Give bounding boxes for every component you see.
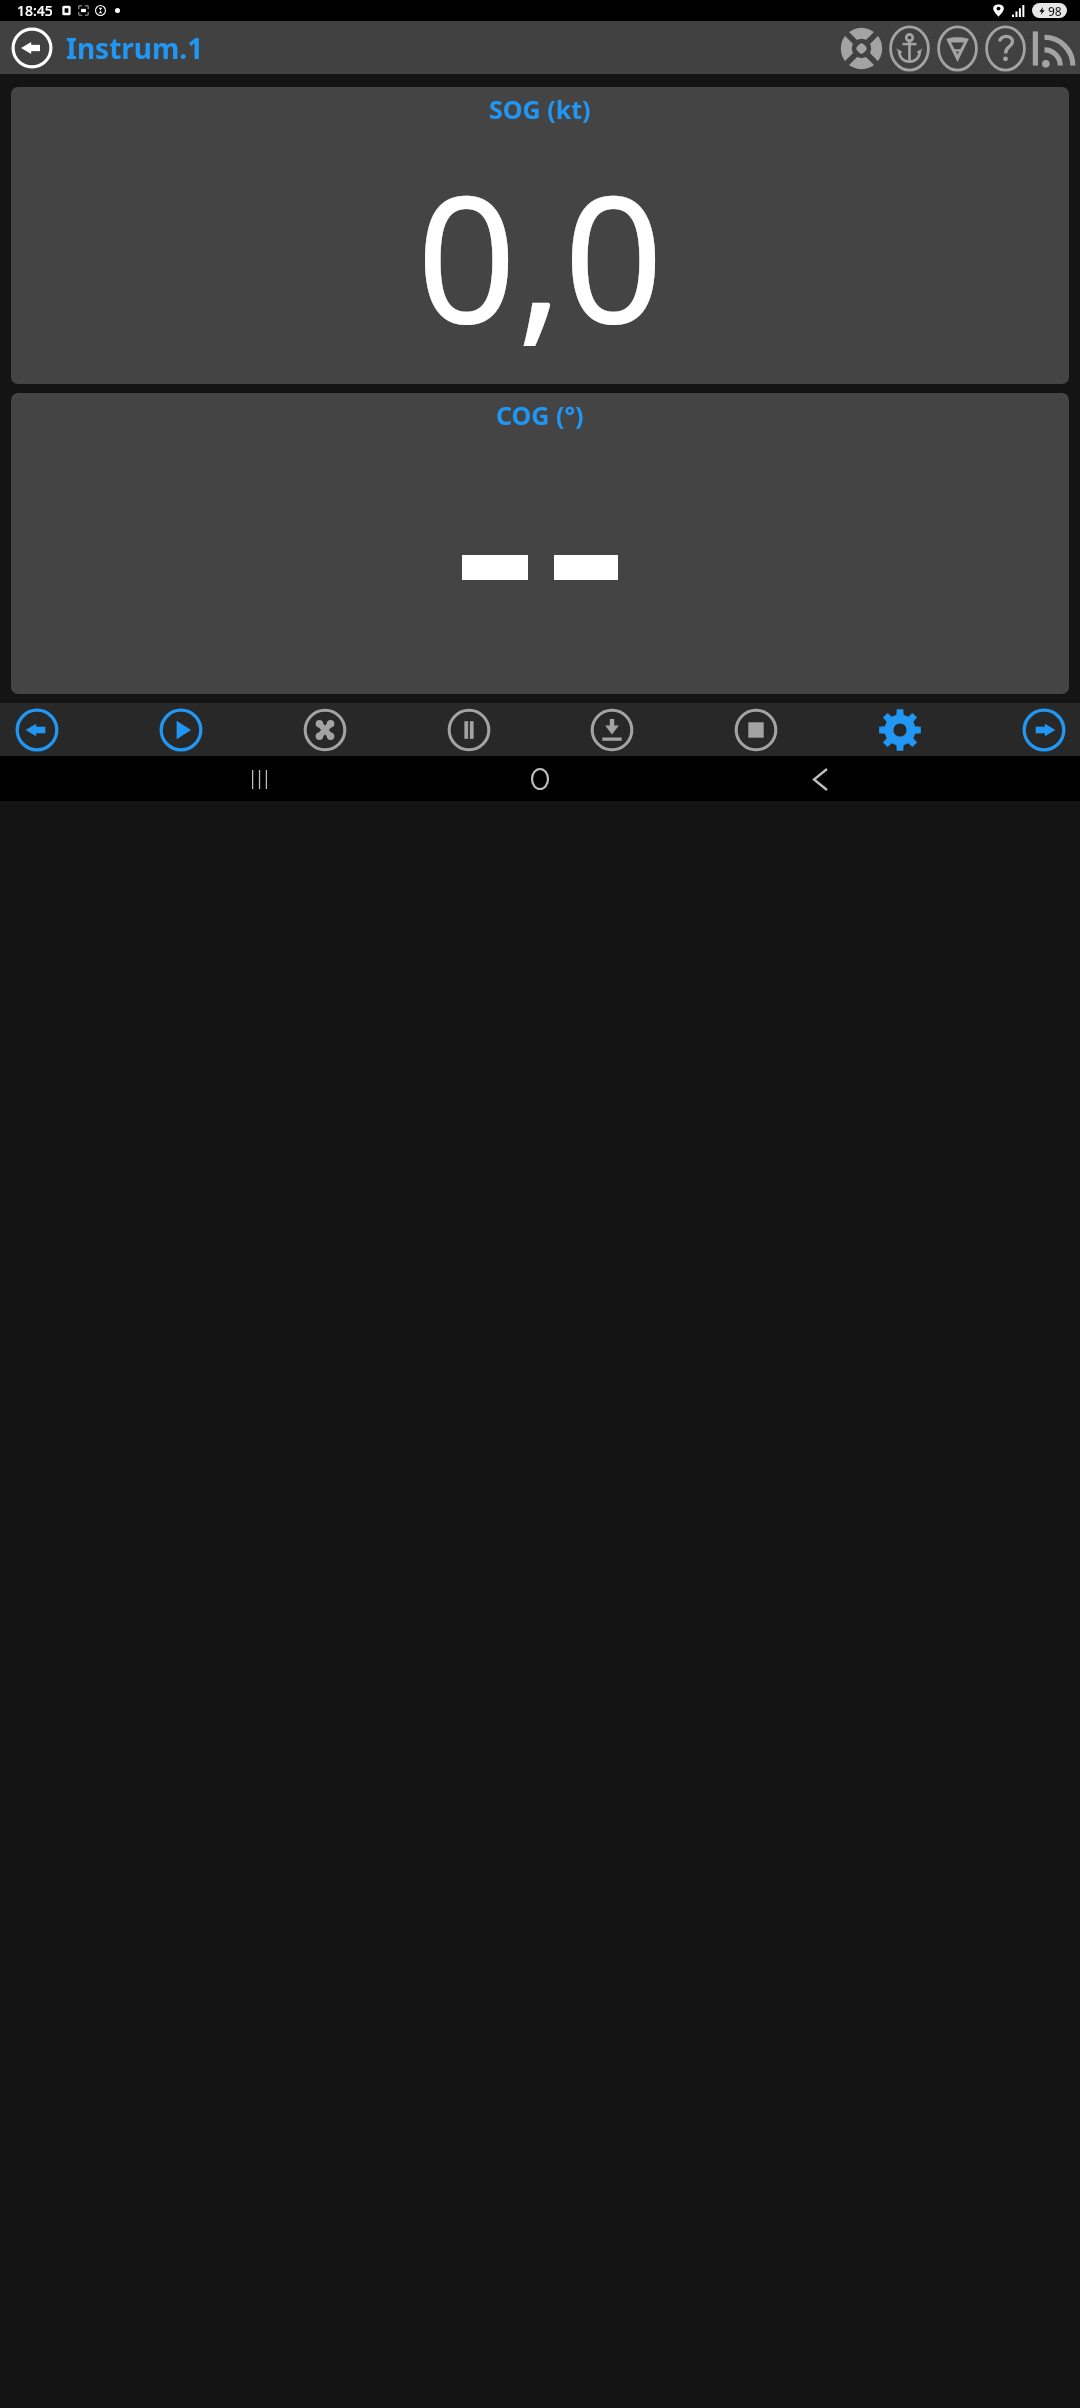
button[interactable]: Play (157, 706, 204, 753)
staticText: 98 (1048, 3, 1062, 18)
staticText: SOG (kt) (489, 92, 591, 126)
button[interactable]: Home (520, 759, 560, 799)
button[interactable]: Settings (876, 706, 923, 753)
button[interactable]: Wind direction (933, 24, 981, 72)
button[interactable]: Pause (445, 706, 492, 753)
button[interactable]: Life ring (837, 24, 885, 72)
staticText: COG (°) (496, 398, 584, 432)
button[interactable]: Anchor (885, 24, 933, 72)
button[interactable]: COG (°) (11, 393, 1069, 694)
button[interactable]: Instrum.1 (66, 29, 204, 67)
staticText: 18:45 (17, 1, 53, 20)
button[interactable]: Tools (301, 706, 348, 753)
button[interactable]: Next (1020, 706, 1067, 753)
button[interactable]: Signal (1029, 24, 1077, 72)
button[interactable]: Download (588, 706, 635, 753)
staticText: 0,0 (416, 136, 664, 374)
button[interactable]: Back (9, 25, 55, 71)
button[interactable]: Help (981, 24, 1029, 72)
button[interactable]: Recents (240, 759, 280, 799)
button[interactable]: Back (800, 759, 840, 799)
button[interactable]: Stop (732, 706, 779, 753)
button[interactable]: Previous (13, 706, 60, 753)
button[interactable]: SOG (kt) (11, 87, 1069, 384)
